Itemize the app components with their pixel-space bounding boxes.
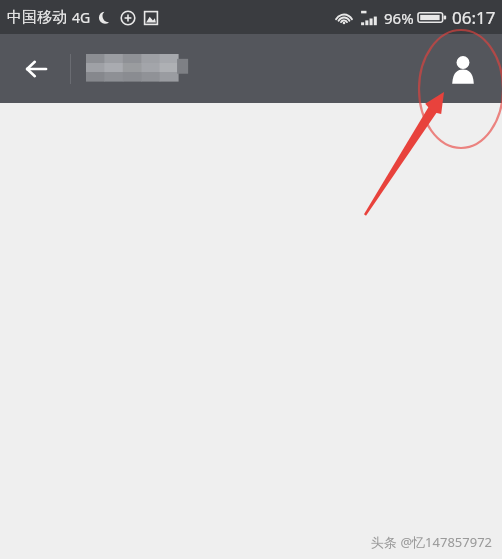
staticText: 06:17 bbox=[452, 6, 496, 29]
staticText: 4G bbox=[72, 8, 91, 27]
staticText: 头条 @忆147857972 bbox=[371, 533, 492, 551]
button[interactable]: Profile bbox=[438, 44, 488, 94]
staticText: 中国移动 bbox=[7, 8, 67, 27]
staticText: 96% bbox=[384, 8, 414, 28]
button[interactable]: Back bbox=[10, 43, 62, 95]
